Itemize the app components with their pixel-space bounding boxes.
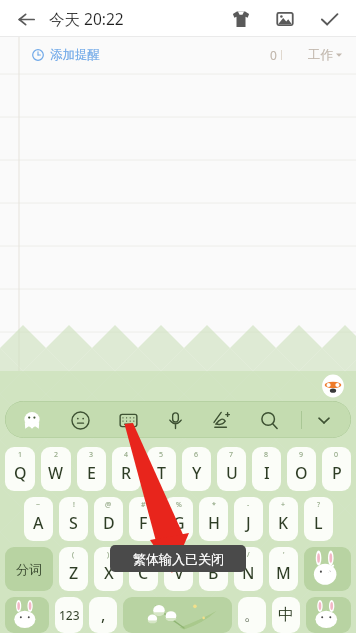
staticText: A <box>33 512 44 534</box>
button[interactable]: 9 <box>287 447 316 491</box>
staticText: 0 <box>270 47 277 63</box>
button[interactable]: Space <box>123 597 232 633</box>
button[interactable]: Voice input <box>160 405 190 435</box>
button[interactable]: Assistant <box>320 373 346 399</box>
staticText: P <box>332 462 342 484</box>
staticText: J <box>246 512 251 534</box>
button[interactable]: Theme <box>226 4 256 34</box>
staticText: E <box>87 462 96 484</box>
button[interactable]: “ <box>129 547 158 591</box>
button[interactable]: Delete <box>304 547 351 591</box>
button[interactable]: 工作 <box>308 47 342 63</box>
staticText: ( <box>72 550 75 560</box>
button[interactable]: 添加提醒 <box>0 37 356 73</box>
staticText: M <box>276 562 291 584</box>
button[interactable]: 5 <box>147 447 176 491</box>
staticText: O <box>295 462 308 484</box>
staticText: 123 <box>59 607 80 623</box>
button[interactable]: Handwriting <box>207 405 237 435</box>
staticText: U <box>226 462 238 484</box>
button[interactable]: + <box>269 497 298 541</box>
button[interactable]: 。 <box>238 597 266 633</box>
staticText: C <box>138 562 149 584</box>
button[interactable]: Symbols <box>5 597 49 633</box>
button[interactable]: - <box>234 497 263 541</box>
button[interactable]: * <box>199 497 228 541</box>
staticText: 6 <box>194 450 199 460</box>
staticText: # <box>141 500 146 510</box>
button[interactable]: % <box>164 497 193 541</box>
button[interactable]: , <box>89 597 117 633</box>
staticText: ” <box>177 550 180 560</box>
staticText: 繁体输入已关闭 <box>133 551 224 567</box>
button[interactable]: Search <box>254 405 284 435</box>
button[interactable]: 6 <box>182 447 211 491</box>
staticText: 2 <box>54 450 59 460</box>
button[interactable]: ” <box>164 547 193 591</box>
button[interactable]: Sogou input <box>17 405 47 435</box>
staticText: W <box>48 462 64 484</box>
staticText: : <box>213 550 215 560</box>
button[interactable]: ( <box>59 547 88 591</box>
button[interactable]: Keyboard layout <box>113 405 143 435</box>
staticText: ! <box>73 500 75 510</box>
button[interactable]: 2 <box>41 447 71 491</box>
staticText: 今天 20:22 <box>49 8 124 29</box>
button[interactable]: Done <box>314 4 344 34</box>
button[interactable]: 123 <box>55 597 83 633</box>
button[interactable]: @ <box>94 497 123 541</box>
staticText: 3 <box>89 450 94 460</box>
staticText: Q <box>14 462 27 484</box>
button[interactable]: / <box>234 547 263 591</box>
button[interactable]: 中 <box>272 597 300 633</box>
button[interactable]: Enter <box>306 597 351 633</box>
staticText: 8 <box>264 450 269 460</box>
button[interactable]: ) <box>94 547 123 591</box>
staticText: @ <box>105 500 112 510</box>
button[interactable]: 1 <box>5 447 35 491</box>
staticText: Y <box>192 462 202 484</box>
button[interactable]: ! <box>59 497 88 541</box>
button[interactable]: 分词 <box>5 547 53 591</box>
button[interactable]: ? <box>304 497 333 541</box>
staticText: G <box>173 512 185 534</box>
button[interactable]: Insert image <box>270 4 300 34</box>
button[interactable]: 4 <box>112 447 141 491</box>
staticText: “ <box>142 550 145 560</box>
staticText: F <box>139 512 148 534</box>
staticText: / <box>247 550 250 560</box>
button[interactable]: ' <box>269 547 298 591</box>
staticText: N <box>242 562 255 584</box>
staticText: 7 <box>229 450 234 460</box>
staticText: 。 <box>244 605 260 625</box>
staticText: K <box>278 512 289 534</box>
button[interactable]: 0 <box>322 447 351 491</box>
button[interactable]: 3 <box>77 447 106 491</box>
staticText: I <box>264 462 270 484</box>
button[interactable]: Back <box>12 5 40 33</box>
staticText: 添加提醒 <box>50 47 100 63</box>
staticText: % <box>176 500 182 510</box>
staticText: ' <box>283 550 285 560</box>
staticText: 工作 <box>308 47 333 63</box>
staticText: T <box>157 462 166 484</box>
staticText: ? <box>317 500 321 510</box>
button[interactable]: 7 <box>217 447 246 491</box>
button[interactable]: # <box>129 497 158 541</box>
staticText: , <box>101 604 106 626</box>
button[interactable]: Collapse <box>309 405 339 435</box>
button[interactable]: : <box>199 547 228 591</box>
button[interactable]: 8 <box>252 447 281 491</box>
staticText: 分词 <box>16 561 42 577</box>
button[interactable]: ~ <box>24 497 53 541</box>
staticText: 4 <box>124 450 129 460</box>
staticText: Z <box>69 562 79 584</box>
staticText: R <box>121 462 132 484</box>
staticText: V <box>174 562 184 584</box>
staticText: ) <box>107 550 110 560</box>
staticText: B <box>208 562 219 584</box>
button[interactable]: Emoji <box>65 405 95 435</box>
staticText: 中 <box>278 605 294 625</box>
staticText: - <box>247 500 250 510</box>
staticText: H <box>208 512 220 534</box>
